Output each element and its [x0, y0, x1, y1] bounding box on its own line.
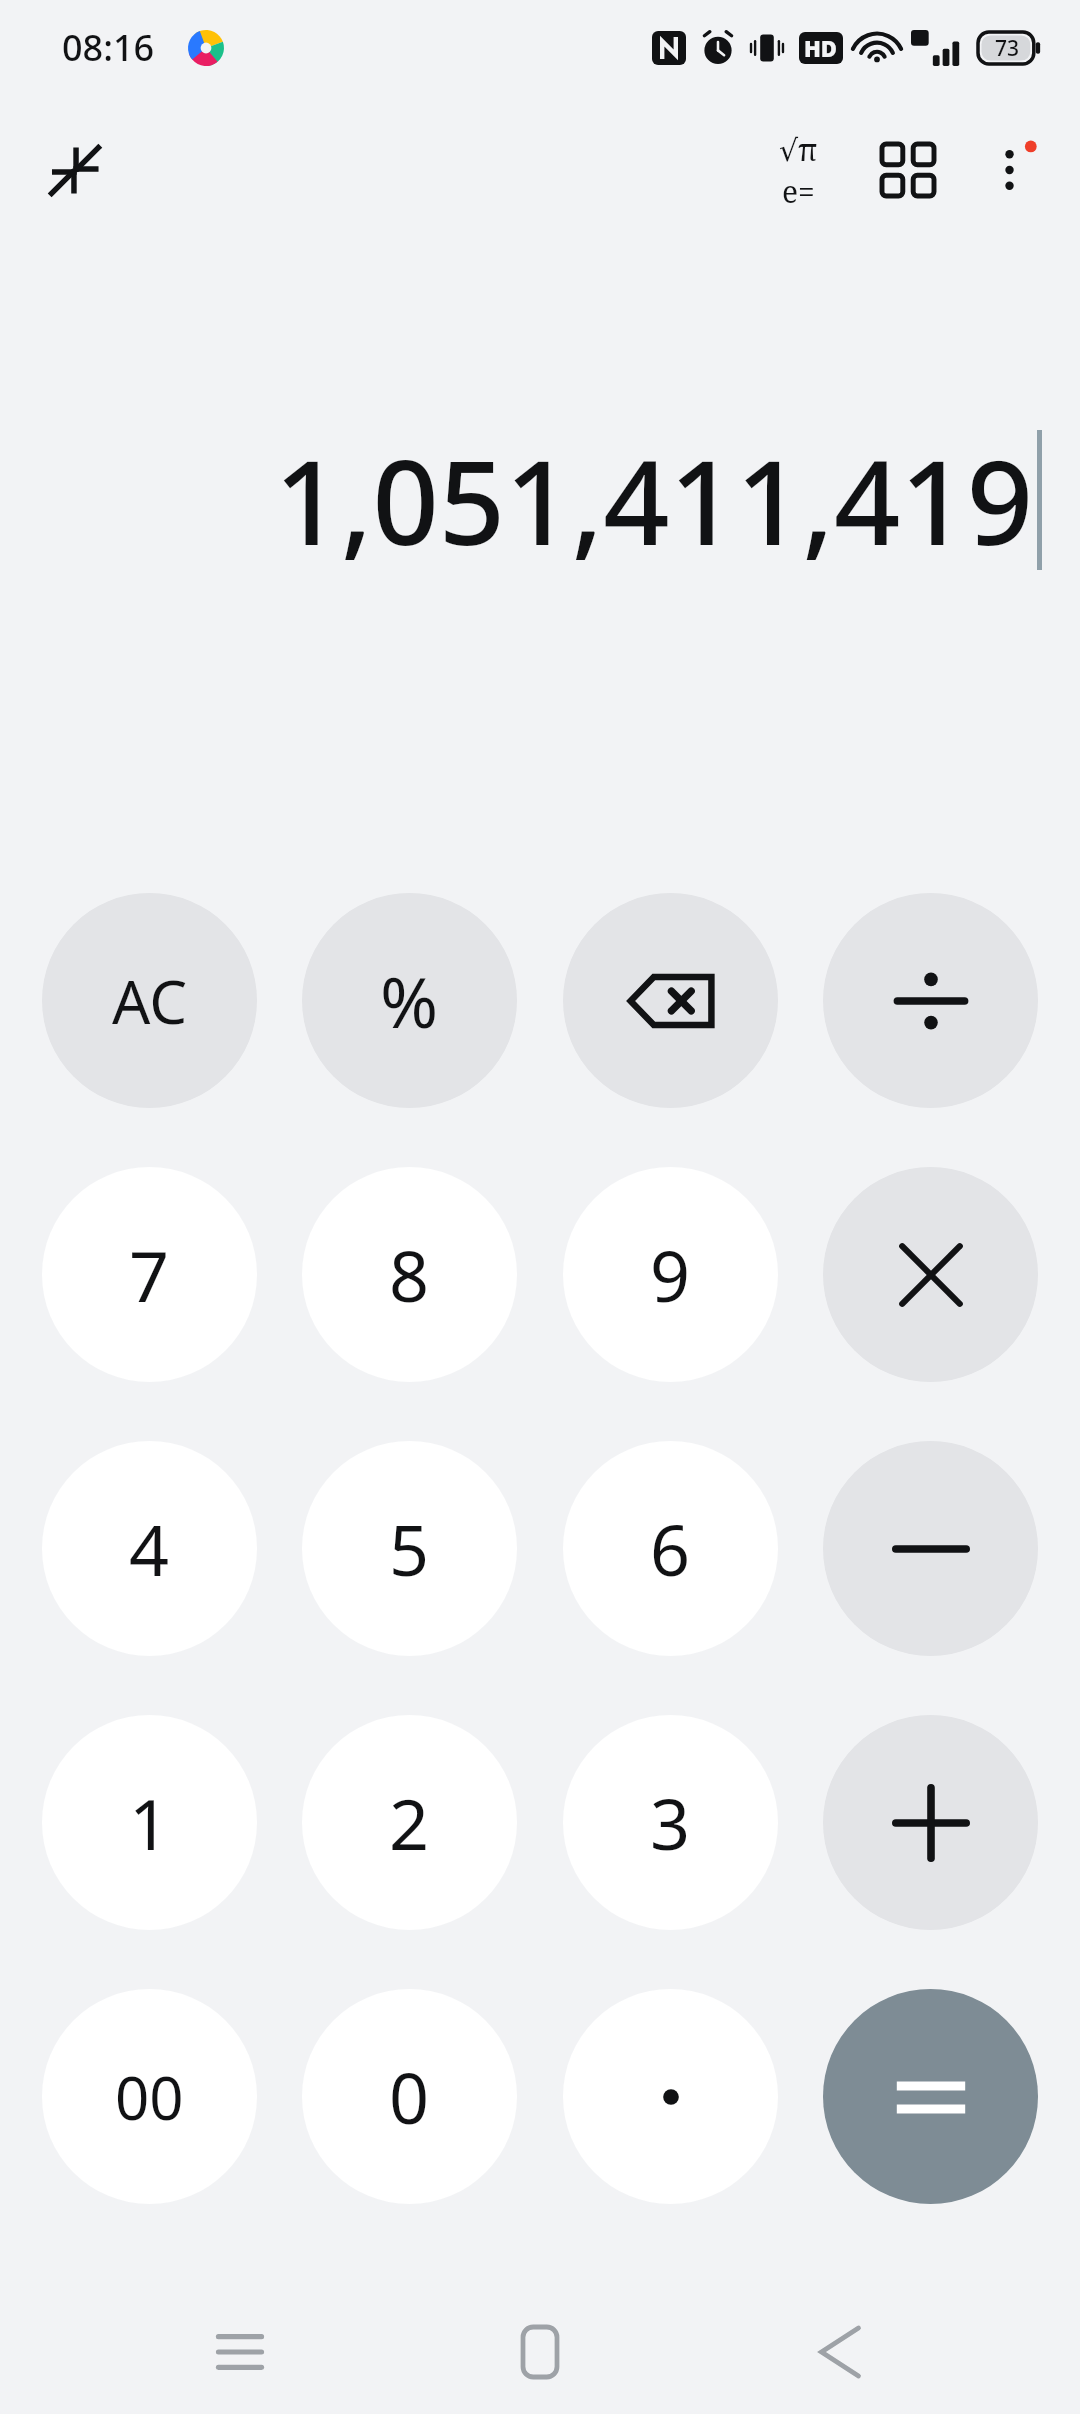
- staticText: √π: [779, 129, 818, 170]
- button[interactable]: 00: [42, 1989, 257, 2204]
- button[interactable]: [823, 1167, 1038, 1382]
- button[interactable]: Collapse: [30, 125, 120, 215]
- button[interactable]: [823, 1715, 1038, 1930]
- button[interactable]: 0: [302, 1989, 517, 2204]
- button[interactable]: 6: [563, 1441, 778, 1656]
- button[interactable]: 2: [302, 1715, 517, 1930]
- button[interactable]: Scientific: [750, 122, 846, 218]
- button[interactable]: More options: [966, 122, 1062, 218]
- staticText: AC: [112, 960, 188, 1042]
- button[interactable]: 1: [42, 1715, 257, 1930]
- staticText: 1: [129, 1775, 170, 1870]
- staticText: 00: [115, 2056, 184, 2138]
- staticText: 9: [650, 1227, 691, 1322]
- button[interactable]: 3: [563, 1715, 778, 1930]
- button[interactable]: AC: [42, 893, 257, 1108]
- staticText: 0: [389, 2049, 430, 2144]
- staticText: 3: [650, 1775, 691, 1870]
- staticText: 2: [389, 1775, 430, 1870]
- button[interactable]: [823, 893, 1038, 1108]
- button[interactable]: [563, 1989, 778, 2204]
- button[interactable]: 7: [42, 1167, 257, 1382]
- button[interactable]: Home: [480, 2292, 600, 2412]
- staticText: 8: [389, 1227, 430, 1322]
- staticText: 08:16: [62, 23, 155, 72]
- button[interactable]: 8: [302, 1167, 517, 1382]
- button[interactable]: Back: [780, 2292, 900, 2412]
- staticText: 73: [995, 34, 1020, 63]
- staticText: HD: [804, 33, 838, 63]
- staticText: e=: [782, 171, 815, 212]
- staticText: %: [380, 953, 439, 1048]
- staticText: 7: [129, 1227, 170, 1322]
- button[interactable]: 5: [302, 1441, 517, 1656]
- button[interactable]: %: [302, 893, 517, 1108]
- staticText: 4: [129, 1501, 170, 1596]
- staticText: 5: [389, 1501, 430, 1596]
- button[interactable]: 9: [563, 1167, 778, 1382]
- button[interactable]: 4: [42, 1441, 257, 1656]
- button[interactable]: [823, 1441, 1038, 1656]
- button[interactable]: Converters: [860, 122, 956, 218]
- button[interactable]: Backspace: [563, 893, 778, 1108]
- button[interactable]: [823, 1989, 1038, 2204]
- button[interactable]: Recents: [180, 2292, 300, 2412]
- staticText: 1,051,411,419: [274, 421, 1033, 579]
- staticText: 6: [650, 1501, 691, 1596]
